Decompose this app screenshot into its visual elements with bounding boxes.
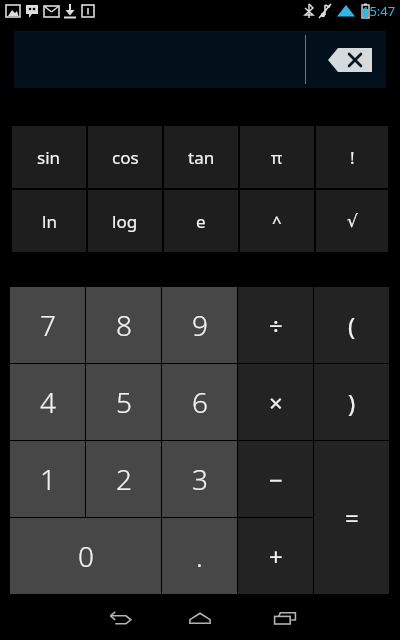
button[interactable]: π xyxy=(240,126,314,188)
button[interactable]: Back xyxy=(90,595,150,640)
button[interactable]: 4 xyxy=(10,364,85,440)
button[interactable]: 0 xyxy=(10,518,161,594)
button[interactable]: 2 xyxy=(86,441,161,517)
button[interactable]: ) xyxy=(314,364,389,440)
button[interactable]: 6 xyxy=(162,364,237,440)
button[interactable]: log xyxy=(88,190,162,252)
staticText: = xyxy=(345,501,359,534)
button[interactable]: 5 xyxy=(86,364,161,440)
button[interactable]: + xyxy=(238,518,313,594)
button[interactable]: = xyxy=(314,441,389,594)
button[interactable]: 9 xyxy=(162,287,237,363)
staticText: 8 xyxy=(116,306,132,344)
staticText: ! xyxy=(350,146,355,169)
staticText: 5 xyxy=(116,383,132,421)
button[interactable]: e xyxy=(164,190,238,252)
staticText: cos xyxy=(112,146,139,169)
button[interactable]: sin xyxy=(12,126,86,188)
button[interactable]: ln xyxy=(12,190,86,252)
staticText: 0 xyxy=(78,537,94,575)
button[interactable]: 8 xyxy=(86,287,161,363)
staticText: 2 xyxy=(116,460,132,498)
staticText: sin xyxy=(37,146,61,169)
button[interactable]: 1 xyxy=(10,441,85,517)
staticText: + xyxy=(269,540,283,573)
staticText: 15:47 xyxy=(362,2,396,20)
staticText: ln xyxy=(42,210,57,233)
button[interactable]: × xyxy=(238,364,313,440)
button[interactable]: tan xyxy=(164,126,238,188)
staticText: ^ xyxy=(272,210,282,233)
staticText: ( xyxy=(348,309,356,342)
staticText: 3 xyxy=(192,460,208,498)
button[interactable]: Recent apps xyxy=(255,595,315,640)
button[interactable]: ! xyxy=(316,126,388,188)
button[interactable]: ^ xyxy=(240,190,314,252)
button[interactable]: Delete xyxy=(14,31,386,88)
staticText: log xyxy=(112,210,138,233)
button[interactable]: . xyxy=(162,518,237,594)
staticText: 6 xyxy=(192,383,208,421)
staticText: 7 xyxy=(40,306,56,344)
staticText: 4 xyxy=(40,383,56,421)
staticText: 9 xyxy=(192,306,208,344)
staticText: − xyxy=(269,463,283,496)
button[interactable]: Delete xyxy=(314,31,386,88)
button[interactable]: ÷ xyxy=(238,287,313,363)
button[interactable]: ( xyxy=(314,287,389,363)
button[interactable]: √ xyxy=(316,190,388,252)
button[interactable]: 3 xyxy=(162,441,237,517)
button[interactable]: cos xyxy=(88,126,162,188)
staticText: 1 xyxy=(40,460,56,498)
staticText: tan xyxy=(188,146,215,169)
button[interactable]: Home xyxy=(170,595,230,640)
staticText: . xyxy=(196,537,203,575)
button[interactable]: 7 xyxy=(10,287,85,363)
staticText: ) xyxy=(348,386,356,419)
button[interactable]: − xyxy=(238,441,313,517)
staticText: e xyxy=(196,210,206,233)
staticText: √ xyxy=(347,211,358,231)
staticText: π xyxy=(271,146,283,169)
staticText: × xyxy=(269,386,283,419)
staticText: ÷ xyxy=(269,309,283,342)
